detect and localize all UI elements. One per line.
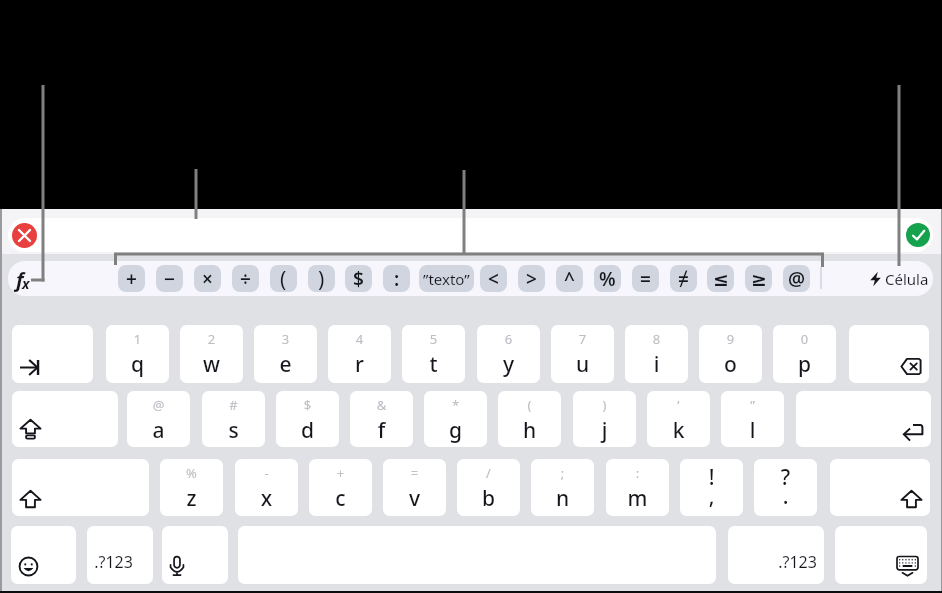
button[interactable]: 4 — [328, 325, 391, 383]
button[interactable]: Ditado — [162, 526, 228, 584]
staticText: e — [254, 350, 317, 379]
button[interactable]: = — [383, 459, 446, 516]
staticText: y — [477, 350, 540, 379]
button[interactable]: ? — [754, 459, 817, 516]
staticText: b — [457, 484, 520, 513]
staticText: $ — [276, 396, 339, 414]
button[interactable]: ” — [721, 391, 784, 447]
button[interactable]: > — [518, 265, 545, 292]
button[interactable]: : — [383, 265, 410, 292]
staticText: + — [126, 266, 137, 292]
staticText: w — [180, 350, 243, 379]
button[interactable]: - — [235, 459, 298, 516]
button[interactable]: ) — [573, 391, 636, 447]
staticText: ) — [318, 265, 325, 292]
button[interactable]: ( — [498, 391, 561, 447]
button[interactable]: < — [480, 265, 507, 292]
button[interactable]: − — [156, 265, 183, 292]
staticText: 5 — [402, 330, 465, 348]
button[interactable]: Funcoes — [10, 261, 50, 296]
button[interactable]: ; — [531, 459, 594, 516]
button[interactable]: ) — [308, 265, 335, 292]
button[interactable]: 0 — [773, 325, 836, 383]
staticText: s — [202, 416, 265, 445]
button[interactable]: Ocultar teclado — [835, 526, 927, 584]
button[interactable]: 5 — [402, 325, 465, 383]
staticText: : — [394, 266, 400, 292]
staticText: 6 — [477, 330, 540, 348]
button[interactable]: * — [424, 391, 487, 447]
staticText: c — [309, 484, 372, 513]
button[interactable]: / — [457, 459, 520, 516]
button[interactable]: Emojis — [11, 526, 76, 584]
button[interactable]: Caps Lock — [12, 391, 118, 447]
staticText: 8 — [625, 330, 688, 348]
button[interactable]: 1 — [106, 325, 169, 383]
button[interactable]: 7 — [551, 325, 614, 383]
button[interactable]: % — [594, 265, 621, 292]
button[interactable]: ≤ — [707, 265, 734, 292]
button[interactable]: % — [160, 459, 223, 516]
staticText: Célula — [885, 269, 929, 289]
button[interactable]: ≠ — [670, 265, 697, 292]
staticText: h — [498, 416, 561, 445]
staticText: . — [754, 482, 817, 511]
staticText: - — [235, 464, 298, 482]
button[interactable]: ÷ — [232, 265, 259, 292]
staticText: @ — [788, 266, 806, 292]
button[interactable]: Tab — [12, 325, 93, 383]
staticText: .?123 — [778, 551, 817, 573]
button[interactable]: Célula — [870, 265, 929, 292]
button[interactable]: Cancelar — [12, 223, 37, 248]
button[interactable]: × — [194, 265, 221, 292]
staticText: ( — [280, 265, 287, 292]
button[interactable]: Shift — [12, 459, 149, 516]
staticText: ) — [573, 396, 636, 414]
button[interactable]: ! — [680, 459, 743, 516]
button[interactable]: ^ — [556, 265, 583, 292]
button[interactable]: 9 — [699, 325, 762, 383]
button[interactable]: + — [118, 265, 145, 292]
button[interactable]: Aceitar — [906, 223, 930, 247]
staticText: ≥ — [751, 268, 767, 290]
staticText: % — [599, 266, 616, 292]
button[interactable]: Enter — [796, 391, 931, 447]
button[interactable]: & — [350, 391, 413, 447]
staticText: .?123 — [94, 551, 133, 573]
button[interactable]: # — [202, 391, 265, 447]
staticText: m — [606, 484, 669, 513]
button[interactable]: 6 — [477, 325, 540, 383]
staticText: u — [551, 350, 614, 379]
button[interactable]: 3 — [254, 325, 317, 383]
staticText: : — [606, 464, 669, 482]
button[interactable]: ( — [270, 265, 297, 292]
button[interactable]: + — [309, 459, 372, 516]
staticText: d — [276, 416, 339, 445]
staticText: > — [526, 266, 537, 292]
button[interactable]: @ — [783, 265, 810, 292]
button[interactable]: .?123 — [728, 526, 824, 584]
button[interactable]: $ — [345, 265, 372, 292]
button[interactable]: 8 — [625, 325, 688, 383]
staticText: t — [402, 350, 465, 379]
button[interactable]: = — [632, 265, 659, 292]
button[interactable]: Shift — [830, 459, 930, 516]
button[interactable]: @ — [127, 391, 190, 447]
staticText: r — [328, 350, 391, 379]
button[interactable]: ’ — [647, 391, 710, 447]
button[interactable]: 2 — [180, 325, 243, 383]
staticText: , — [680, 482, 743, 511]
button[interactable]: : — [606, 459, 669, 516]
staticText: z — [160, 484, 223, 513]
staticText: = — [383, 464, 446, 482]
button[interactable]: ≥ — [745, 265, 772, 292]
button[interactable]: Apagar — [849, 325, 929, 383]
staticText: ; — [531, 464, 594, 482]
staticText: 7 — [551, 330, 614, 348]
staticText: n — [531, 484, 594, 513]
staticText: ^ — [564, 266, 575, 292]
button[interactable]: $ — [276, 391, 339, 447]
button[interactable]: ”texto” — [419, 265, 474, 292]
button[interactable]: .?123 — [87, 526, 153, 584]
